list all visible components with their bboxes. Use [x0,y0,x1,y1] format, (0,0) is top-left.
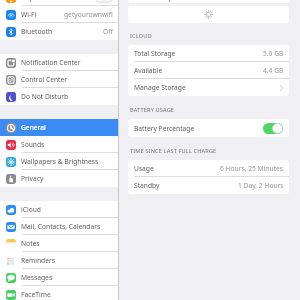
staticText: Mail, Contacts, Calendars [21,222,101,231]
staticText: 6 Hours, 25 Minutes [220,164,284,173]
button[interactable]: Airplane Mode [0,0,118,6]
button[interactable]: Do Not Disturb [0,88,118,105]
staticText: Airplane Mode [21,0,67,2]
button[interactable]: Messages [0,269,118,286]
staticText: 5.0 GB [263,49,284,58]
staticText: Battery Percentage [134,124,195,133]
other: Loading [204,10,213,19]
staticText: TIME SINCE LAST FULL CHARGE [130,147,217,155]
button[interactable]: Available [128,62,289,79]
button[interactable]: Wallpapers & Brightness [0,153,118,170]
staticText: Total Storage [134,49,176,58]
button[interactable]: Privacy [0,170,118,187]
staticText: Manage Storage [134,83,186,92]
staticText: 1 Day, 2 Hours [238,181,284,190]
button[interactable]: Usage [128,160,289,177]
staticText: Bluetooth [21,27,53,36]
button[interactable]: Manage Storage [128,79,289,96]
staticText: Available [134,66,163,75]
staticText: Reminders [21,256,55,265]
staticText: Software Update [134,0,187,2]
staticText: Usage [134,164,154,173]
staticText: Standby [134,181,160,190]
button[interactable]: Battery Percentage [128,119,289,137]
staticText: Wi-Fi [21,10,37,19]
staticText: Sounds [21,140,45,149]
button[interactable]: Standby [128,177,289,194]
button[interactable]: Reminders [0,252,118,269]
staticText: Messages [21,273,53,282]
button[interactable]: Bluetooth [0,23,118,40]
button[interactable]: Wi-Fi [0,6,118,23]
staticText: Privacy [21,174,44,183]
button[interactable]: Sounds [0,136,118,153]
button[interactable]: General [0,119,118,136]
button[interactable]: Software Update [128,0,289,3]
staticText: Wallpapers & Brightness [21,157,99,166]
button[interactable]: iCloud [0,201,118,218]
staticText: General [21,123,46,132]
staticText: 4.4 GB [263,66,284,75]
staticText: iCloud [21,205,41,214]
button[interactable]: Notes [0,235,118,252]
button[interactable]: FaceTime [0,286,118,300]
button[interactable]: Mail, Contacts, Calendars [0,218,118,235]
staticText: Notification Center [21,58,81,67]
button[interactable]: Notification Center [0,54,118,71]
button[interactable]: Control Center [0,71,118,88]
staticText: Off [103,27,113,36]
staticText: BATTERY USAGE [130,106,175,114]
staticText: Do Not Disturb [21,92,69,101]
staticText: FaceTime [21,290,51,299]
staticText: Control Center [21,75,68,84]
staticText: Notes [21,239,40,248]
staticText: ICLOUD [130,32,152,40]
button[interactable]: Total Storage [128,45,289,62]
staticText: getyourownwifi [64,10,113,19]
